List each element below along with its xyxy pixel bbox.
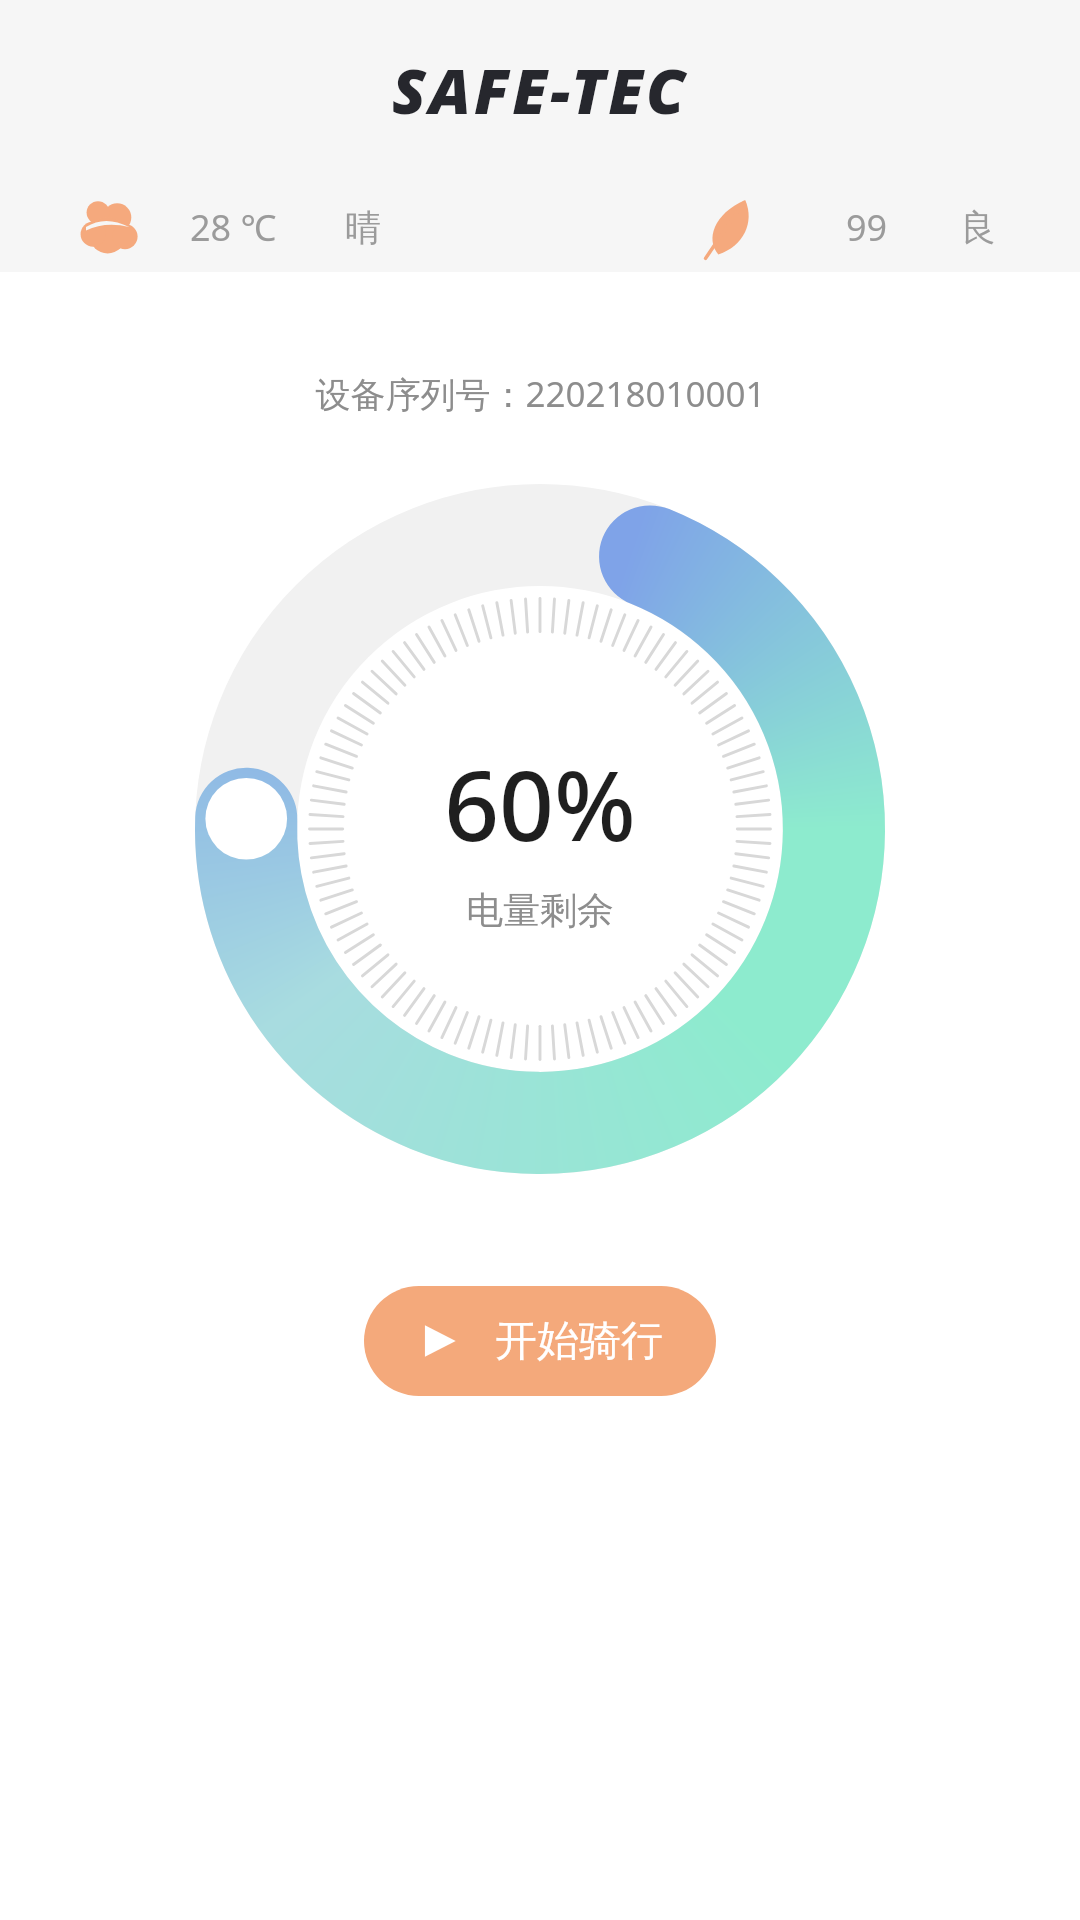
- staticText: 28 ℃: [190, 203, 277, 252]
- other: Air quality: [694, 195, 758, 259]
- button[interactable]: 开始骑行: [364, 1286, 716, 1396]
- staticText: 良: [960, 205, 996, 250]
- staticText: 晴: [345, 205, 381, 250]
- staticText: 开始骑行: [495, 1315, 663, 1368]
- staticText: 60%: [444, 738, 636, 869]
- staticText: 99: [846, 203, 888, 252]
- staticText: 设备序列号：220218010001: [315, 370, 766, 418]
- staticText: 电量剩余: [466, 887, 614, 934]
- other: Weather: [80, 197, 140, 257]
- staticText: SAFE-TEC: [392, 48, 689, 132]
